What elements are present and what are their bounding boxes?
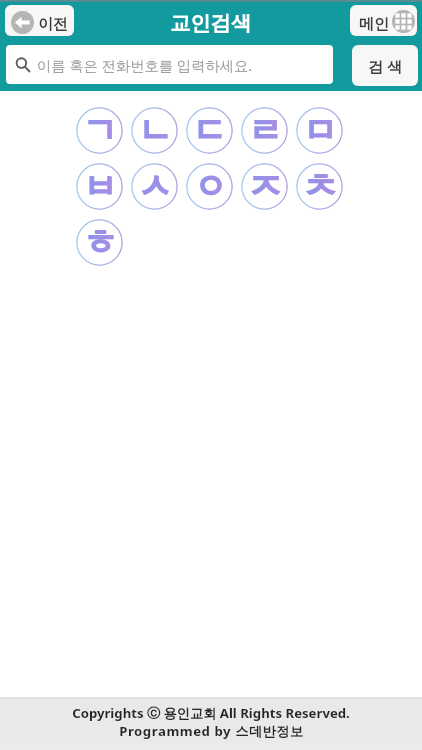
staticText: ㅁ (303, 109, 337, 152)
staticText: 메인 (359, 15, 389, 34)
button[interactable]: 메인 (350, 5, 417, 36)
other: Main menu (392, 10, 415, 33)
staticText: ㄱ (83, 109, 117, 152)
staticText: 이름 혹은 전화번호를 입력하세요. (37, 56, 253, 76)
staticText: ㅊ (303, 165, 337, 208)
staticText: Programmed by 스데반정보 (119, 722, 304, 740)
button[interactable]: ㅅ (131, 163, 178, 210)
staticText: 이전 (38, 15, 68, 34)
button[interactable]: ㅎ (76, 219, 123, 266)
button[interactable]: ㅁ (296, 107, 343, 154)
staticText: ㅎ (83, 221, 117, 264)
button[interactable]: ㅊ (296, 163, 343, 210)
button[interactable]: 검 색 (352, 45, 418, 86)
button[interactable]: ㄱ (76, 107, 123, 154)
staticText: ㅂ (83, 165, 117, 208)
staticText: ㅅ (138, 165, 172, 208)
staticText: ㄴ (138, 109, 172, 152)
staticText: 교인검색 (170, 10, 252, 36)
staticText: Copyrights ⓒ 용인교회 All Rights Reserved. (72, 704, 350, 722)
staticText: ㅇ (193, 165, 227, 208)
button[interactable]: ㅂ (76, 163, 123, 210)
button[interactable]: ㄹ (241, 107, 288, 154)
button[interactable]: ㅇ (186, 163, 233, 210)
staticText: ㅈ (248, 165, 282, 208)
staticText: ㄷ (193, 109, 227, 152)
other: Back (11, 11, 34, 34)
button[interactable]: 이름 혹은 전화번호를 입력하세요. (6, 45, 333, 84)
button[interactable]: ㄷ (186, 107, 233, 154)
button[interactable]: ㄴ (131, 107, 178, 154)
staticText: 검 색 (368, 56, 402, 76)
button[interactable]: ㅈ (241, 163, 288, 210)
button[interactable]: Back (5, 5, 74, 36)
staticText: ㄹ (248, 109, 282, 152)
